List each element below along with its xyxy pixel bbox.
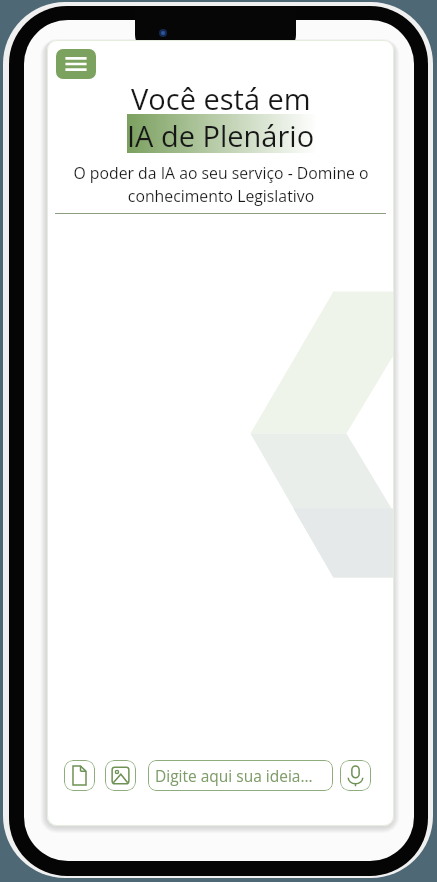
staticText: Você está em: [131, 79, 311, 113]
button[interactable]: Start voice input: [340, 760, 371, 791]
button[interactable]: Digite aqui sua ideia...: [148, 760, 333, 791]
button[interactable]: Open navigation menu: [56, 49, 96, 79]
staticText: IA de Plenário: [127, 116, 315, 150]
staticText: Digite aqui sua ideia...: [155, 765, 313, 786]
staticText: O poder da IA ao seu serviço - Domine o …: [73, 162, 369, 207]
button[interactable]: Attach a document: [64, 760, 95, 791]
button[interactable]: Attach an image: [105, 760, 136, 791]
